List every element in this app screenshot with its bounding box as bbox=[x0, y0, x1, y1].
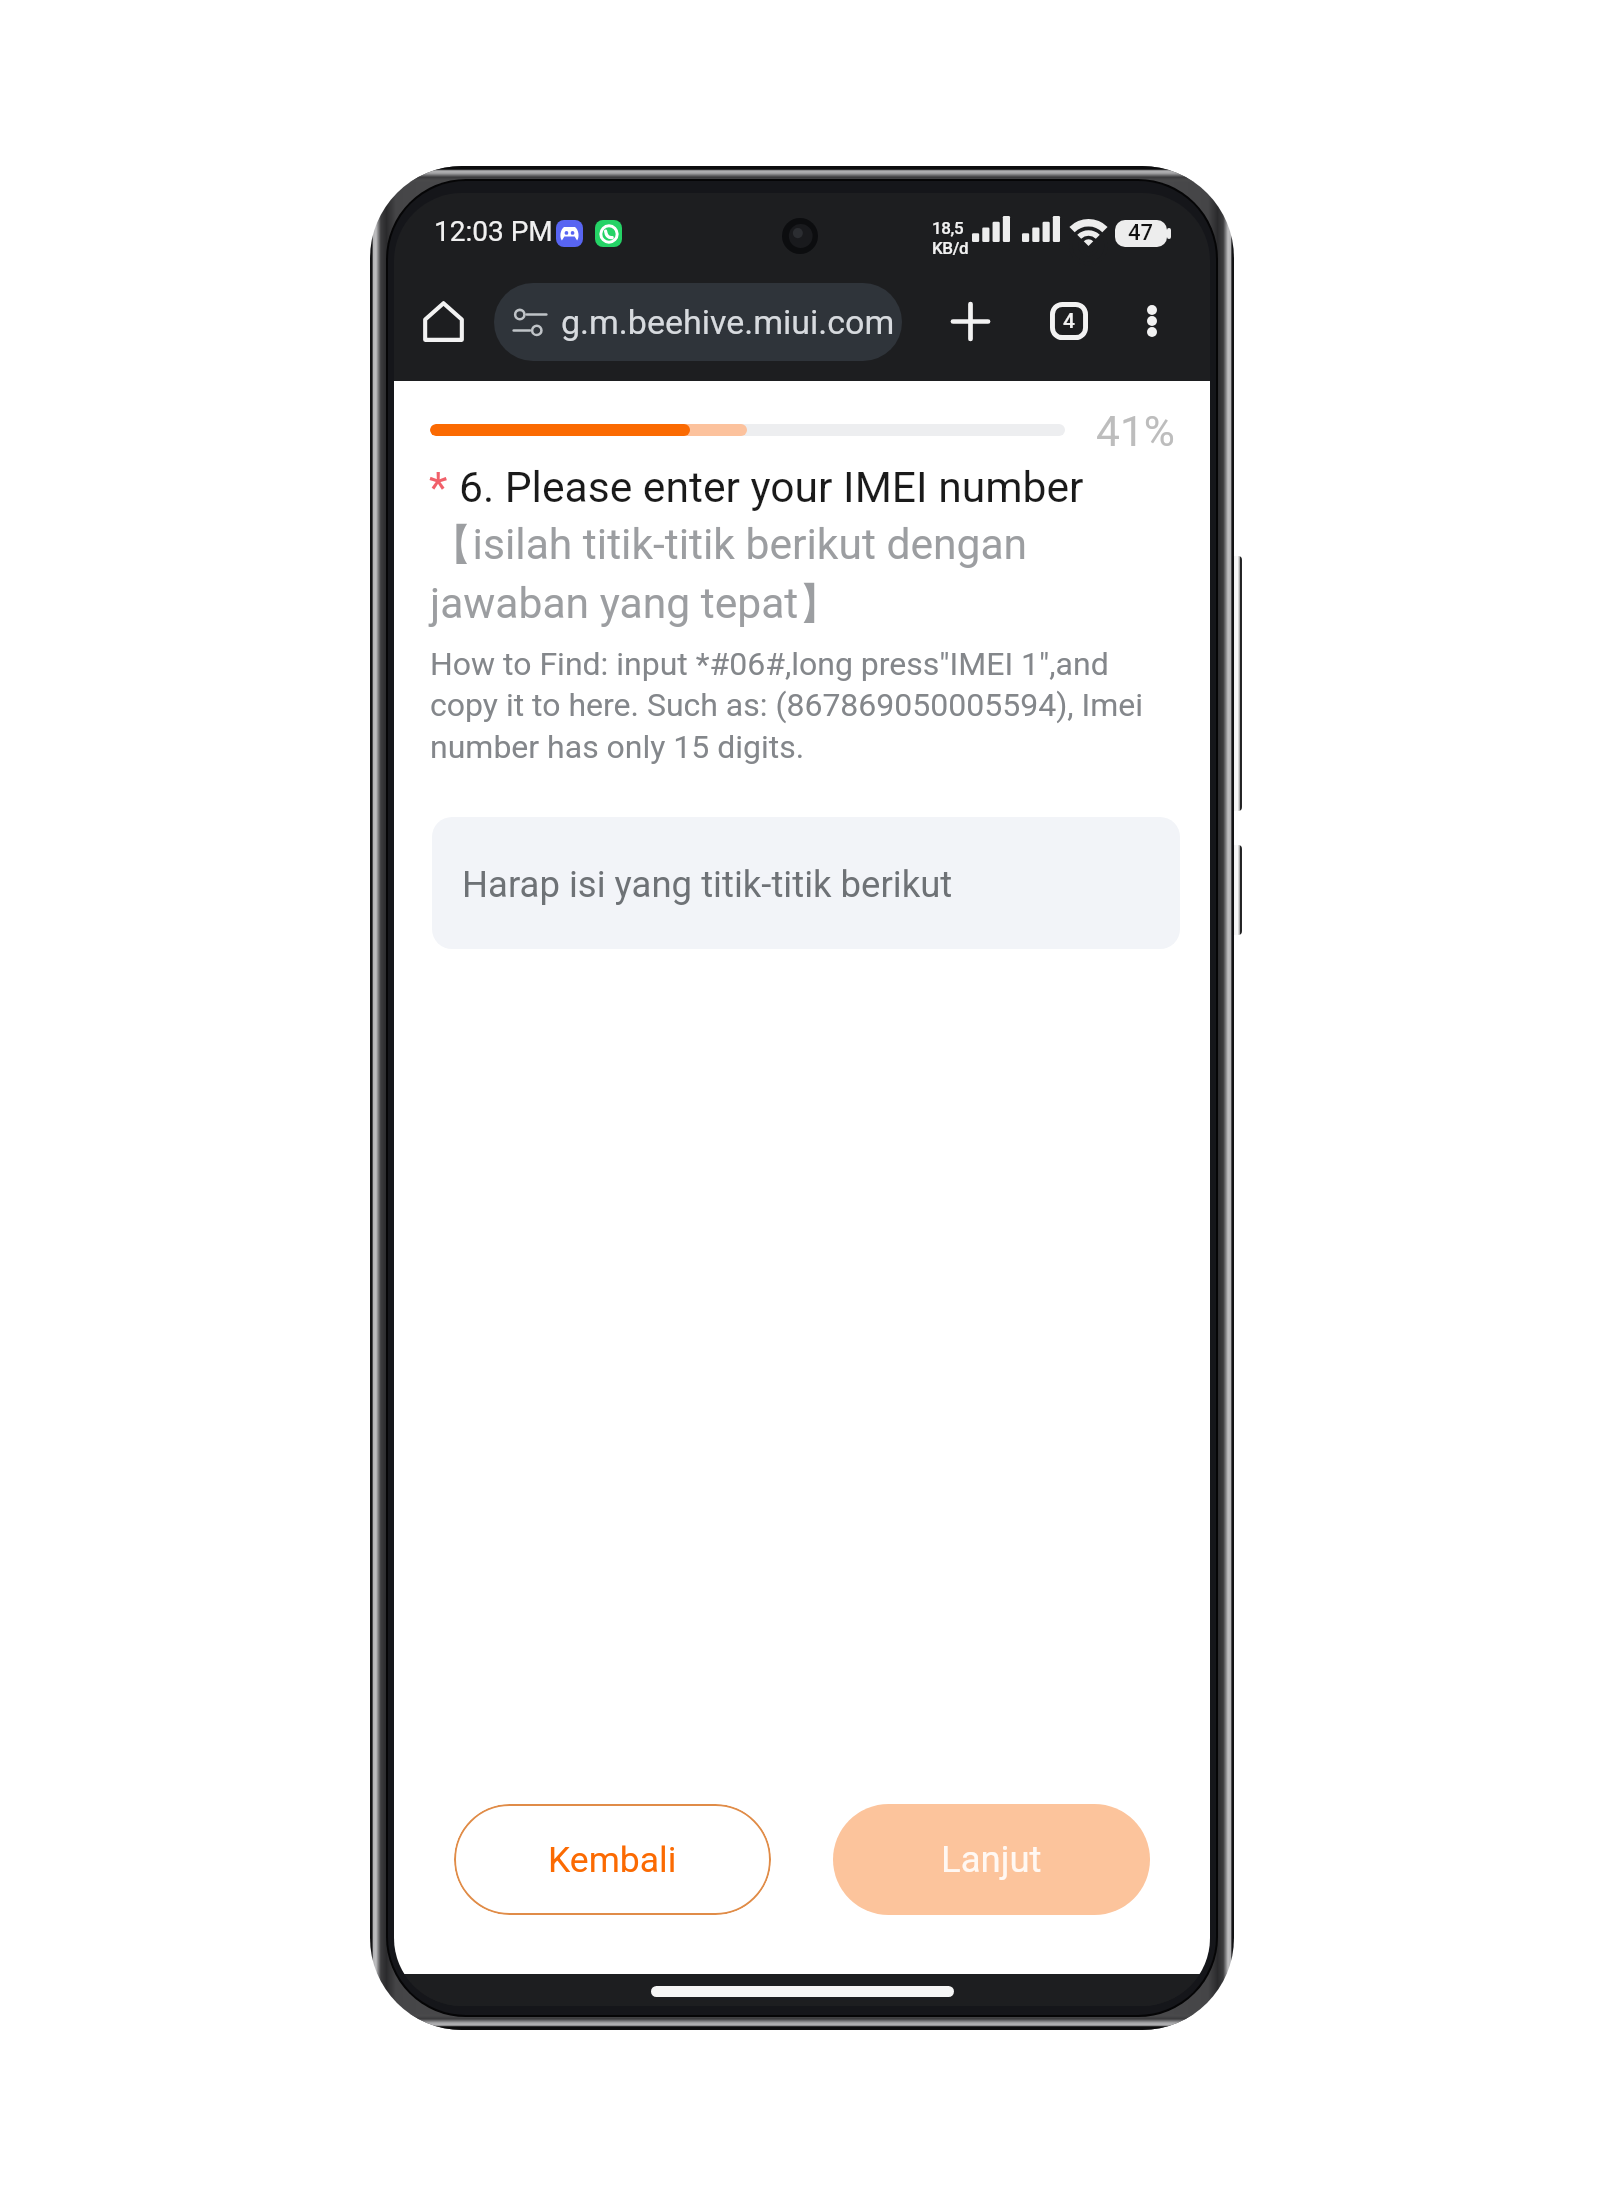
staticText: KB/d bbox=[932, 238, 969, 258]
button[interactable]: Kembali bbox=[454, 1804, 771, 1915]
staticText: Kembali bbox=[548, 1839, 677, 1881]
button[interactable]: New tab bbox=[946, 297, 994, 345]
staticText: 【isilah titik-titik berikut dengan jawab… bbox=[430, 518, 1110, 630]
button[interactable]: Lanjut bbox=[833, 1804, 1150, 1915]
staticText: How to Find: input *#06#,long press"IMEI… bbox=[430, 645, 1146, 766]
button[interactable]: Tabs bbox=[1045, 297, 1093, 345]
staticText: Harap isi yang titik-titik berikut bbox=[462, 863, 953, 906]
button[interactable]: Home bbox=[419, 297, 467, 345]
staticText: * bbox=[429, 462, 448, 512]
button[interactable]: g.m.beehive.miui.com bbox=[494, 283, 902, 361]
staticText: 41% bbox=[1096, 407, 1175, 457]
staticText: 47 bbox=[1128, 220, 1154, 246]
staticText: g.m.beehive.miui.com bbox=[561, 302, 895, 342]
staticText: Lanjut bbox=[941, 1838, 1042, 1881]
staticText: 4 bbox=[1063, 309, 1075, 334]
staticText: 12:03 PM bbox=[434, 215, 553, 248]
staticText: 18,5 bbox=[932, 218, 964, 238]
staticText: 6. Please enter your IMEI number bbox=[459, 462, 1084, 512]
button[interactable]: Harap isi yang titik-titik berikut bbox=[432, 817, 1180, 949]
button[interactable]: More options bbox=[1128, 297, 1176, 345]
